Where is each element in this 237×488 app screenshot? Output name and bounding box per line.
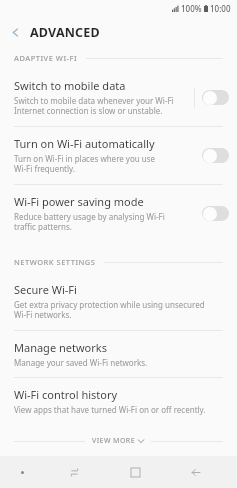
button[interactable]: Back bbox=[0, 17, 30, 47]
button[interactable]: Toggle bbox=[202, 206, 229, 221]
staticText: Get extra privacy protection while using… bbox=[14, 299, 205, 321]
staticText: ADAPTIVE WI-FI bbox=[14, 53, 78, 63]
staticText: Turn on Wi-Fi in places where you use Wi… bbox=[14, 153, 156, 175]
staticText: Switch to mobile data whenever your Wi-F… bbox=[14, 95, 174, 117]
staticText: Secure Wi-Fi bbox=[14, 282, 77, 297]
staticText: Manage your saved Wi-Fi networks. bbox=[14, 357, 148, 368]
button[interactable]: Wi-Fi power saving mode bbox=[0, 185, 237, 242]
staticText: Switch to mobile data bbox=[14, 78, 126, 93]
button[interactable]: Switch to mobile data bbox=[0, 69, 237, 126]
button[interactable]: Toggle bbox=[202, 148, 229, 163]
staticText: ADVANCED bbox=[30, 24, 100, 41]
staticText: VIEW MORE bbox=[92, 436, 135, 446]
button[interactable]: VIEW MORE bbox=[0, 431, 237, 451]
staticText: NETWORK SETTINGS bbox=[14, 257, 96, 267]
button[interactable]: Recents bbox=[44, 456, 105, 488]
button[interactable]: Toggle bbox=[202, 90, 229, 105]
button[interactable]: Home bbox=[105, 456, 165, 488]
button[interactable]: Manage networks bbox=[0, 331, 237, 377]
button[interactable]: Secure Wi-Fi bbox=[0, 273, 237, 330]
button[interactable]: Turn on Wi-Fi automatically bbox=[0, 127, 237, 184]
staticText: 100% bbox=[181, 3, 202, 14]
staticText: Wi-Fi control history bbox=[14, 387, 118, 402]
staticText: View apps that have turned Wi-Fi on or o… bbox=[14, 404, 206, 415]
staticText: Reduce battery usage by analysing Wi-Fi … bbox=[14, 211, 165, 233]
button[interactable]: Back bbox=[165, 456, 225, 488]
staticText: 10:00 bbox=[210, 3, 231, 14]
staticText: Manage networks bbox=[14, 340, 107, 355]
button[interactable]: Wi-Fi control history bbox=[0, 378, 237, 424]
staticText: Turn on Wi-Fi automatically bbox=[14, 136, 155, 151]
staticText: Wi-Fi power saving mode bbox=[14, 194, 144, 209]
